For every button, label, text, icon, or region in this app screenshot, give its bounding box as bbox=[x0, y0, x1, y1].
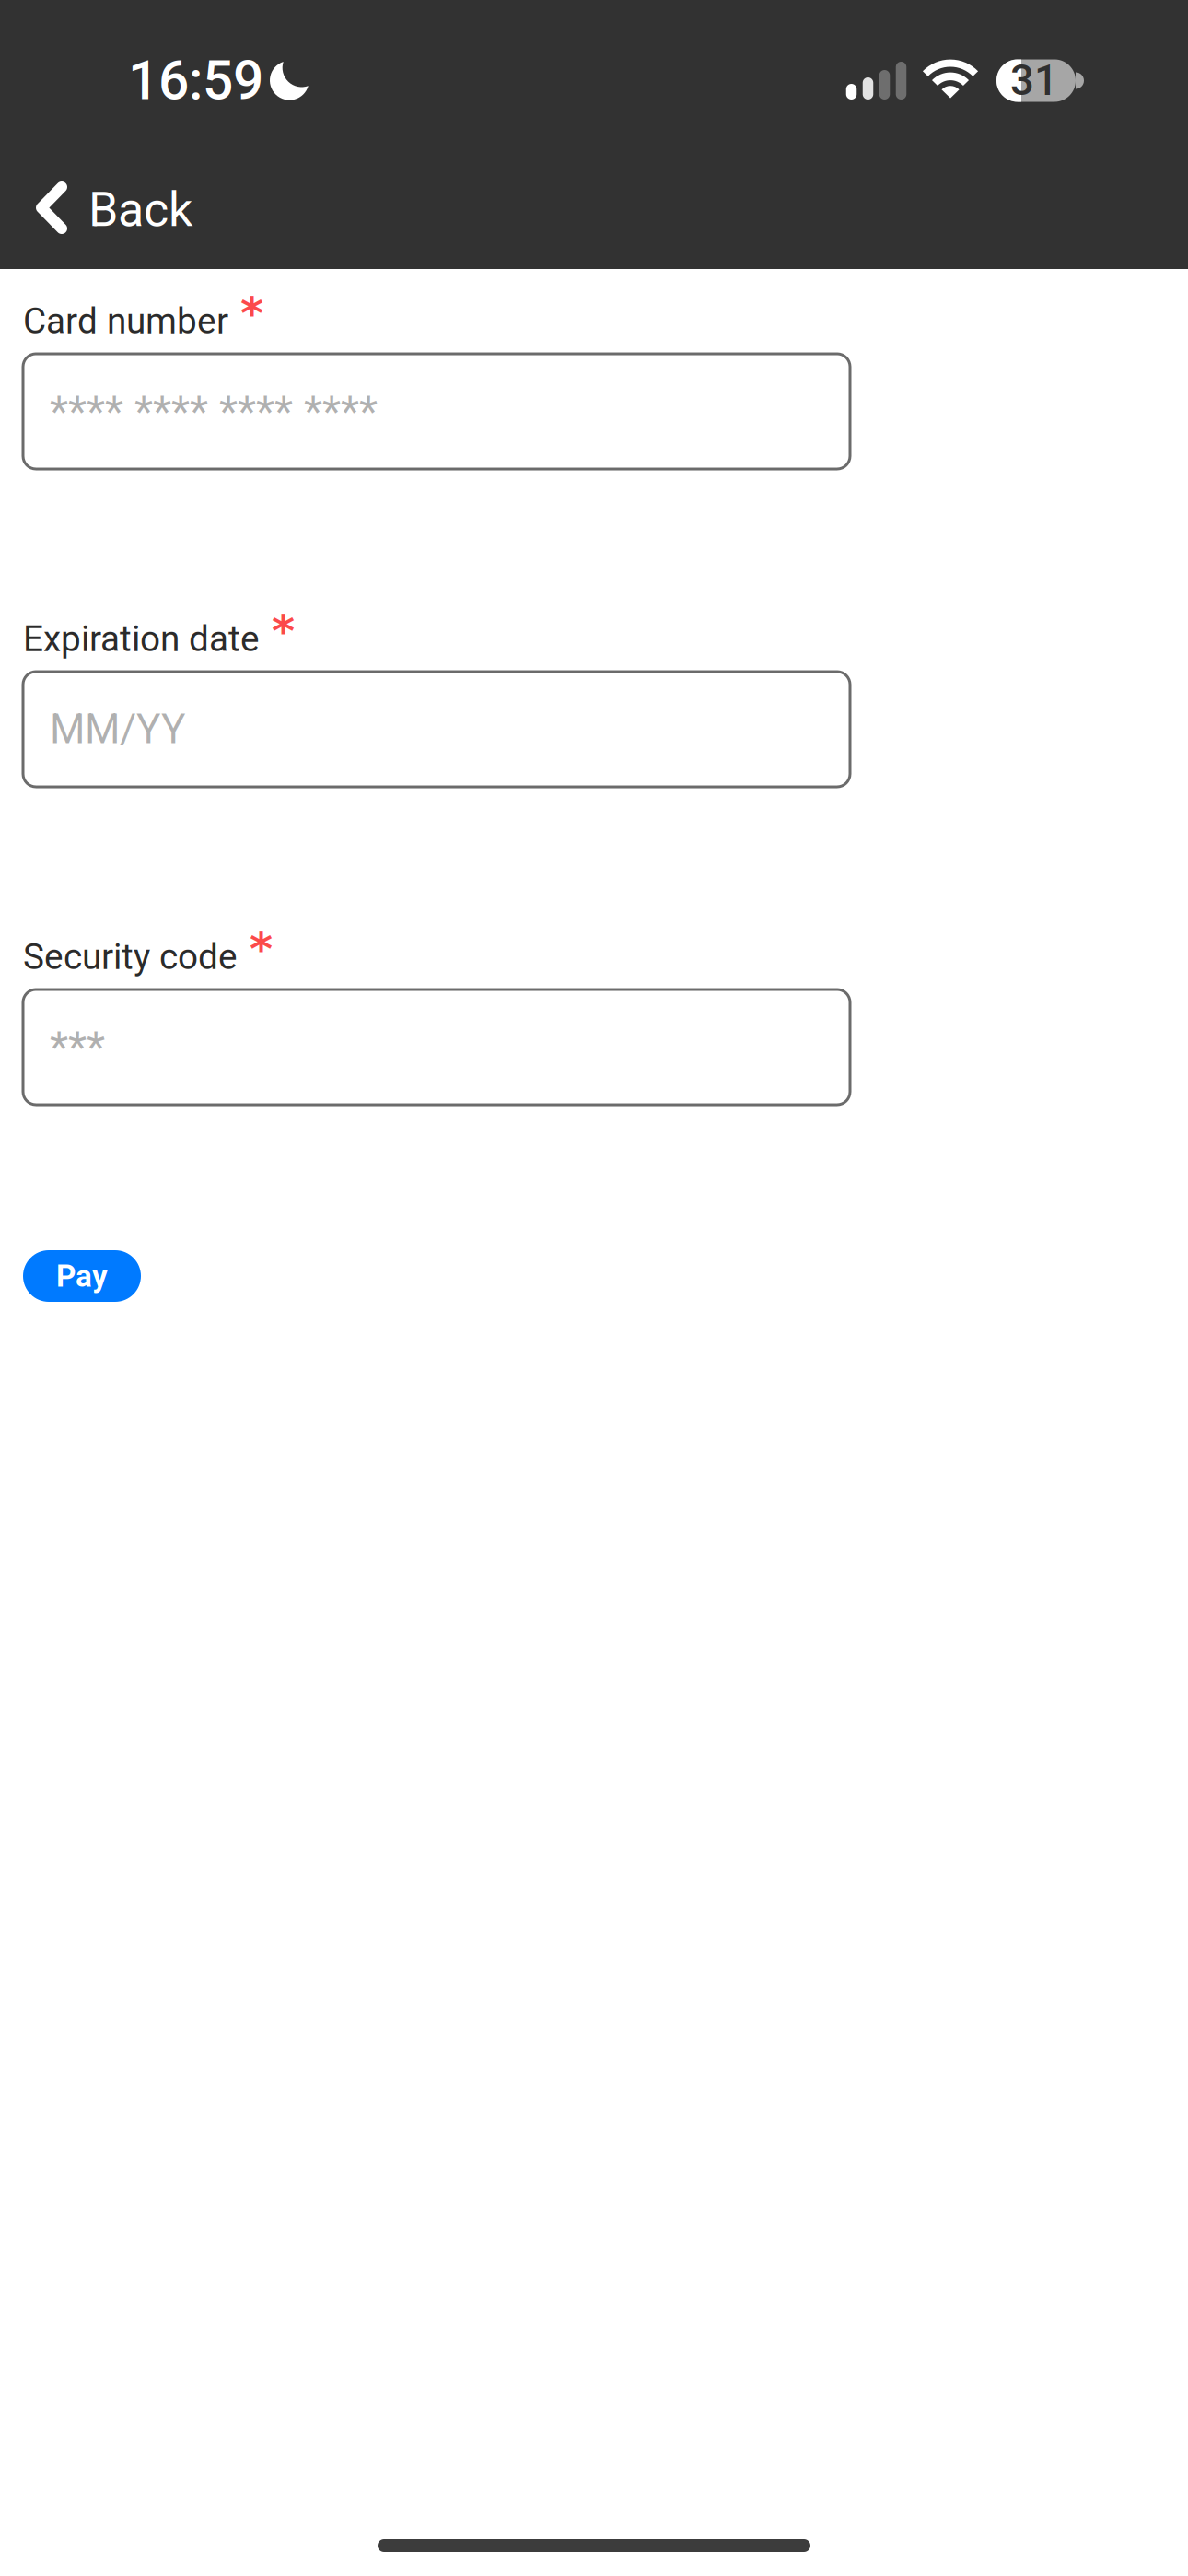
staticText: Security code bbox=[23, 936, 238, 978]
staticText: MM/YY bbox=[50, 705, 185, 753]
staticText: Back bbox=[88, 181, 192, 238]
staticText: Pay bbox=[56, 1258, 108, 1294]
button[interactable]: MM/YY bbox=[23, 672, 850, 787]
staticText: Expiration date bbox=[23, 618, 260, 660]
staticText: * bbox=[240, 287, 263, 339]
staticText: 31 bbox=[1010, 56, 1058, 105]
button[interactable]: Back bbox=[0, 161, 220, 269]
staticText: **** **** **** **** bbox=[50, 386, 378, 437]
staticText: * bbox=[250, 923, 273, 975]
button[interactable]: Pay bbox=[23, 1250, 141, 1302]
staticText: 16:59 bbox=[128, 49, 263, 112]
button[interactable]: **** **** **** **** bbox=[23, 354, 850, 469]
staticText: *** bbox=[50, 1022, 105, 1072]
button[interactable]: *** bbox=[23, 989, 850, 1105]
staticText: * bbox=[272, 605, 295, 657]
staticText: Card number bbox=[23, 300, 228, 342]
